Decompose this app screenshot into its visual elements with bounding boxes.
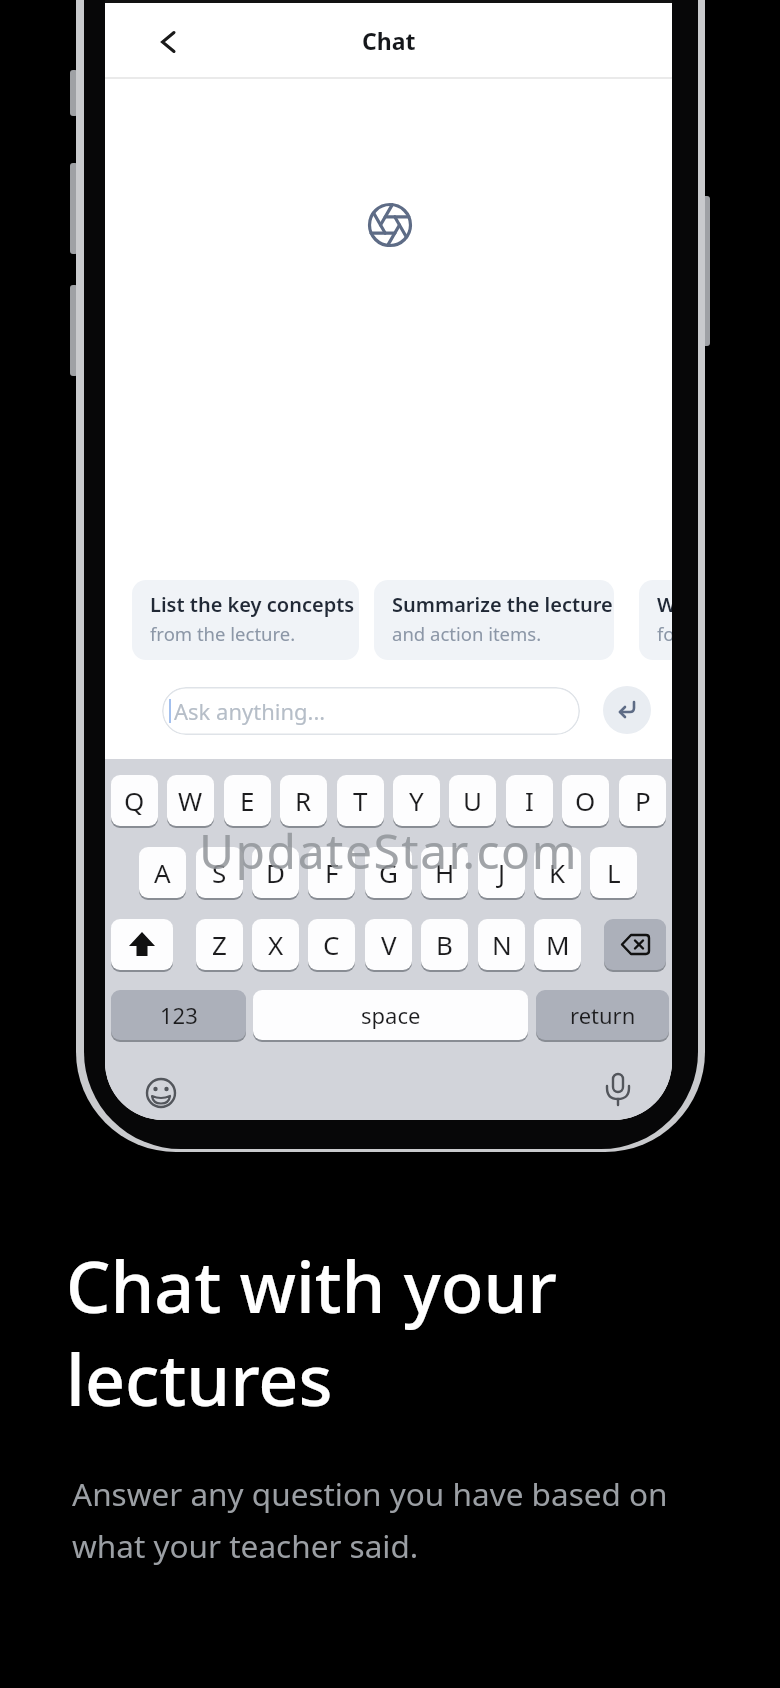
staticText: List the key concepts (150, 591, 355, 618)
staticText: H (435, 855, 455, 890)
button[interactable]: T (337, 775, 384, 826)
button[interactable] (148, 21, 190, 63)
button[interactable]: V (365, 919, 412, 970)
staticText: Y (409, 783, 424, 818)
staticText: return (570, 1000, 636, 1030)
staticText: UpdateStar.com (199, 818, 579, 883)
staticText: N (492, 927, 512, 962)
staticText: for the exam? (657, 621, 672, 646)
button[interactable]: Y (393, 775, 440, 826)
staticText: 123 (160, 1000, 198, 1030)
button[interactable]: What topics are (639, 580, 672, 660)
button[interactable]: X (252, 919, 299, 970)
staticText: Summarize the lecture (392, 591, 613, 618)
staticText: Answer any question you have based on wh… (72, 1472, 668, 1567)
staticText: from the lecture. (150, 621, 296, 646)
staticText: What topics are (657, 591, 672, 618)
button[interactable]: return (536, 990, 669, 1040)
button[interactable]: space (253, 990, 528, 1040)
button[interactable]: L (590, 847, 637, 898)
staticText: J (498, 855, 506, 890)
button[interactable]: E (224, 775, 271, 826)
staticText: Q (124, 783, 145, 818)
staticText: Chat with your lectures (66, 1238, 557, 1427)
button[interactable]: U (449, 775, 496, 826)
staticText: R (295, 783, 312, 818)
staticText: E (240, 783, 255, 818)
staticText: B (436, 927, 453, 962)
staticText: X (268, 927, 284, 962)
staticText: L (607, 855, 621, 890)
button[interactable]: M (534, 919, 581, 970)
staticText: K (549, 855, 566, 890)
staticText: space (361, 1000, 421, 1030)
button[interactable]: S (196, 847, 243, 898)
button[interactable]: O (562, 775, 609, 826)
staticText: S (212, 855, 227, 890)
button[interactable]: H (421, 847, 468, 898)
button[interactable]: F (308, 847, 355, 898)
staticText: F (325, 855, 339, 890)
staticText: O (575, 783, 596, 818)
button[interactable] (111, 919, 173, 970)
staticText: D (266, 855, 285, 890)
button[interactable]: 123 (111, 990, 246, 1040)
button[interactable]: List the key concepts (132, 580, 359, 660)
staticText: V (381, 927, 397, 962)
staticText: T (353, 783, 368, 818)
staticText: W (178, 783, 203, 818)
button[interactable]: N (478, 919, 525, 970)
button[interactable]: K (534, 847, 581, 898)
button[interactable]: G (365, 847, 412, 898)
button[interactable]: J (478, 847, 525, 898)
button[interactable] (604, 919, 666, 970)
button[interactable] (603, 686, 651, 734)
button[interactable]: R (280, 775, 327, 826)
button[interactable]: Ask anything... (162, 687, 580, 735)
staticText: and action items. (392, 621, 542, 646)
staticText: U (463, 783, 483, 818)
button[interactable]: Summarize the lecture (374, 580, 614, 660)
staticText: A (154, 855, 171, 890)
button[interactable]: P (619, 775, 666, 826)
button[interactable]: A (139, 847, 186, 898)
button[interactable]: Z (196, 919, 243, 970)
button[interactable]: Q (111, 775, 158, 826)
button[interactable]: C (308, 919, 355, 970)
button[interactable]: D (252, 847, 299, 898)
staticText: M (546, 927, 570, 962)
staticText: Chat (362, 25, 416, 56)
staticText: Ask anything... (174, 696, 326, 726)
staticText: P (635, 783, 651, 818)
staticText: I (525, 783, 534, 818)
button[interactable]: I (506, 775, 553, 826)
staticText: C (323, 927, 340, 962)
staticText: G (379, 855, 398, 890)
staticText: Z (212, 927, 227, 962)
button[interactable]: B (421, 919, 468, 970)
button[interactable]: W (167, 775, 214, 826)
